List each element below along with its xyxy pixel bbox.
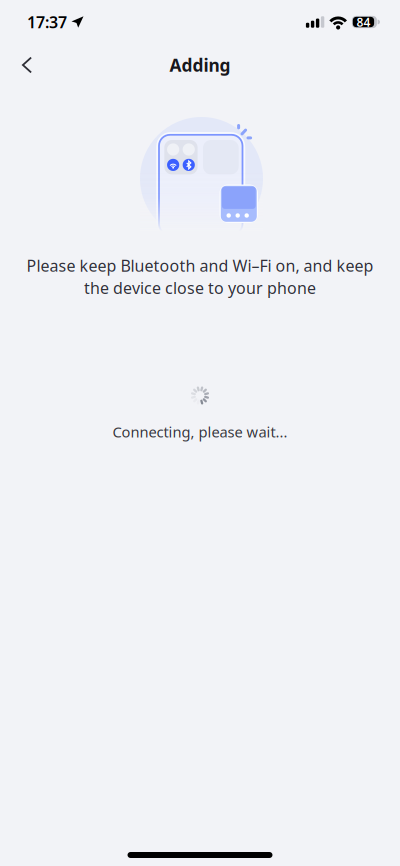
- staticText: Please keep Bluetooth and Wi–Fi on, and …: [26, 255, 373, 276]
- staticText: Adding: [169, 53, 230, 76]
- button[interactable]: Back: [10, 45, 44, 85]
- staticText: the device close to your phone: [84, 277, 316, 298]
- staticText: 17:37: [27, 11, 67, 33]
- staticText: 84: [356, 14, 370, 30]
- staticText: Connecting, please wait...: [112, 422, 287, 441]
